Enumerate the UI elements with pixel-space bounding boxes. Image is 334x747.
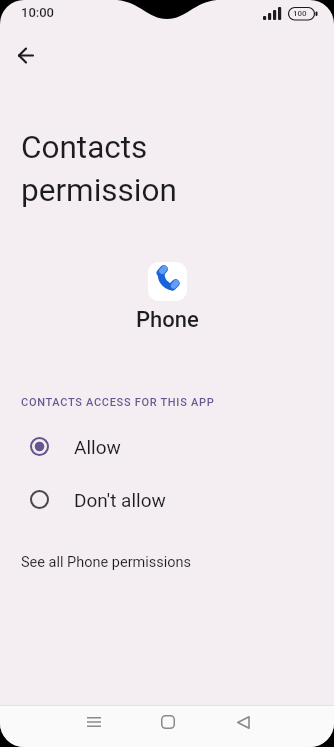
- button[interactable]: [78, 706, 110, 738]
- staticText: See all Phone permissions: [21, 554, 192, 571]
- button[interactable]: Don't allow: [0, 483, 334, 516]
- staticText: 10:00: [21, 5, 55, 20]
- button[interactable]: [227, 706, 259, 738]
- staticText: Don't allow: [74, 489, 166, 511]
- button[interactable]: [10, 40, 42, 72]
- button[interactable]: [152, 706, 184, 738]
- button[interactable]: See all Phone permissions: [0, 545, 334, 579]
- staticText: 100: [293, 9, 307, 18]
- button[interactable]: Allow: [0, 430, 334, 463]
- staticText: Contacts permission: [21, 129, 177, 209]
- staticText: Allow: [74, 436, 121, 458]
- staticText: CONTACTS ACCESS FOR THIS APP: [21, 396, 215, 409]
- staticText: Phone: [136, 307, 199, 333]
